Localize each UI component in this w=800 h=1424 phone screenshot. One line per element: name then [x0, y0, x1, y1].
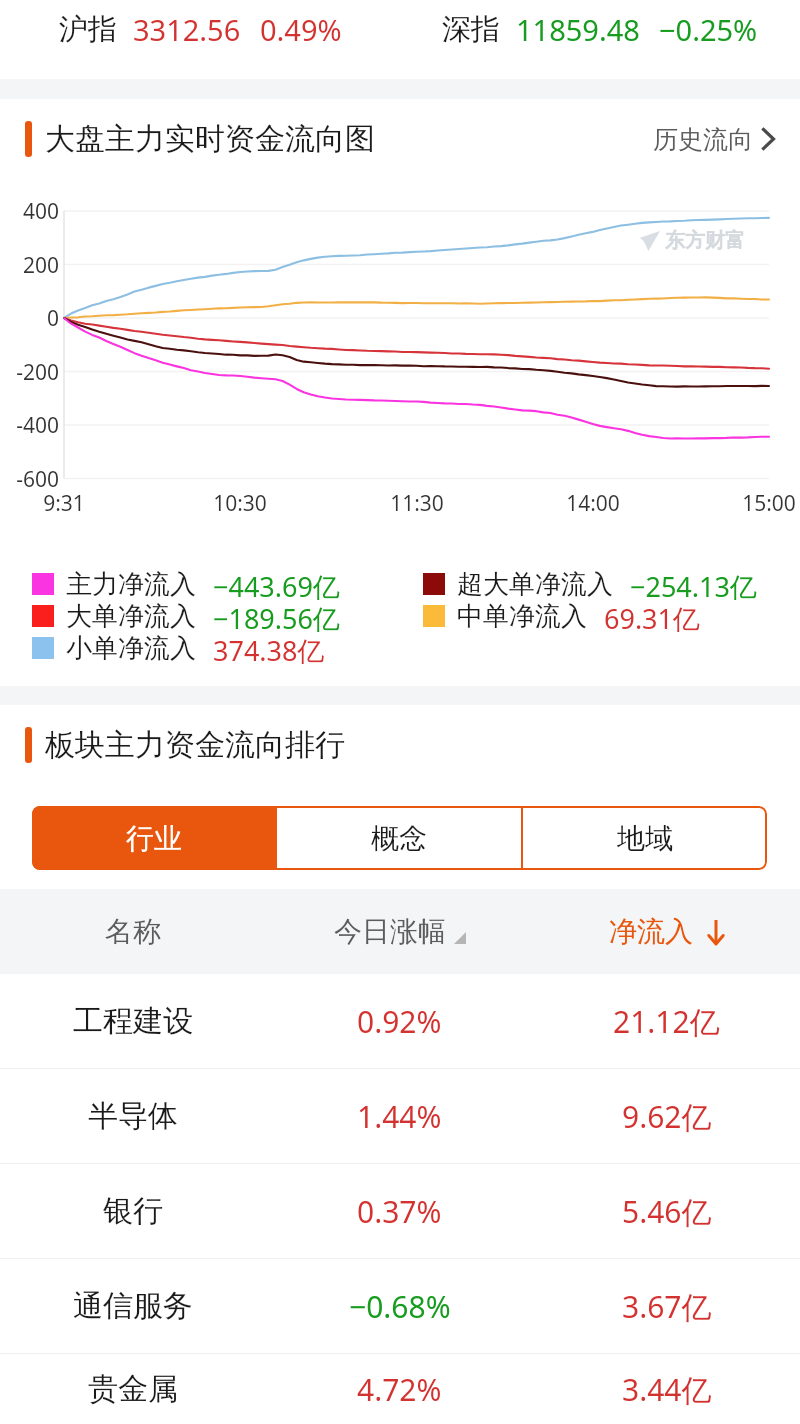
- staticText: 小单净流入: [66, 632, 196, 664]
- button[interactable]: 大单净流入: [32, 600, 340, 632]
- staticText: 沪指: [59, 11, 117, 48]
- button[interactable]: 历史流向: [653, 99, 775, 179]
- staticText: 14:00: [566, 489, 620, 518]
- staticText: 3312.56: [133, 10, 241, 49]
- staticText: −0.68%: [349, 1286, 451, 1327]
- staticText: 3.44亿: [622, 1369, 712, 1410]
- staticText: 11:30: [390, 489, 444, 518]
- staticText: 15:00: [742, 489, 796, 518]
- button[interactable]: 概念: [277, 806, 521, 870]
- staticText: 大单净流入: [66, 600, 196, 632]
- staticText: 银行: [103, 1192, 163, 1230]
- button[interactable]: 沪指: [0, 0, 400, 58]
- staticText: −443.69亿: [213, 568, 340, 600]
- staticText: -400: [16, 411, 59, 440]
- staticText: 9.62亿: [622, 1096, 712, 1137]
- staticText: -600: [16, 465, 59, 494]
- staticText: 5.46亿: [622, 1191, 712, 1232]
- staticText: 大盘主力实时资金流向图: [45, 120, 375, 158]
- staticText: 名称: [105, 914, 161, 949]
- staticText: 中单净流入: [457, 600, 587, 632]
- staticText: 通信服务: [73, 1287, 193, 1325]
- staticText: 400: [22, 197, 59, 226]
- button[interactable]: 工程建设: [0, 974, 800, 1068]
- staticText: 1.44%: [357, 1096, 442, 1137]
- button[interactable]: 今日涨幅: [266, 889, 533, 974]
- button[interactable]: 银行: [0, 1164, 800, 1258]
- button[interactable]: 贵金属: [0, 1354, 800, 1424]
- staticText: 200: [22, 251, 59, 280]
- staticText: 东方财富: [665, 228, 745, 253]
- staticText: 工程建设: [73, 1002, 193, 1040]
- staticText: 超大单净流入: [457, 568, 613, 600]
- staticText: -200: [16, 358, 59, 387]
- staticText: 深指: [442, 11, 500, 48]
- button[interactable]: 中单净流入: [423, 600, 701, 632]
- staticText: −189.56亿: [213, 600, 340, 632]
- staticText: 半导体: [88, 1097, 178, 1135]
- button[interactable]: 小单净流入: [32, 632, 325, 664]
- staticText: 净流入: [609, 914, 693, 949]
- staticText: 今日涨幅: [334, 914, 446, 949]
- staticText: 0.92%: [357, 1001, 442, 1042]
- staticText: 4.72%: [357, 1369, 442, 1410]
- staticText: 10:30: [213, 489, 267, 518]
- button[interactable]: 通信服务: [0, 1259, 800, 1353]
- staticText: 21.12亿: [613, 1001, 720, 1042]
- staticText: 9:31: [43, 489, 85, 518]
- staticText: 11859.48: [516, 10, 640, 49]
- staticText: 0.49%: [260, 10, 342, 49]
- staticText: 0: [46, 304, 59, 333]
- staticText: 主力净流入: [66, 568, 196, 600]
- staticText: 贵金属: [88, 1370, 178, 1408]
- staticText: 地域: [617, 821, 673, 856]
- button[interactable]: 大盘主力实时资金流向图表: [0, 179, 800, 568]
- staticText: 历史流向: [653, 124, 753, 155]
- button[interactable]: 深指: [400, 0, 800, 58]
- staticText: 概念: [371, 821, 427, 856]
- button[interactable]: 行业: [32, 806, 275, 870]
- staticText: 行业: [126, 821, 182, 856]
- button[interactable]: 地域: [523, 806, 767, 870]
- button[interactable]: 净流入: [533, 889, 800, 974]
- staticText: −0.25%: [659, 10, 758, 49]
- button[interactable]: 主力净流入: [32, 568, 340, 600]
- staticText: 0.37%: [357, 1191, 442, 1232]
- staticText: 3.67亿: [622, 1286, 712, 1327]
- button[interactable]: 名称: [0, 889, 266, 974]
- staticText: 板块主力资金流向排行: [45, 726, 345, 764]
- button[interactable]: 超大单净流入: [423, 568, 757, 600]
- staticText: −254.13亿: [630, 568, 757, 600]
- staticText: 374.38亿: [213, 632, 325, 664]
- button[interactable]: 半导体: [0, 1069, 800, 1163]
- staticText: 69.31亿: [604, 600, 701, 632]
